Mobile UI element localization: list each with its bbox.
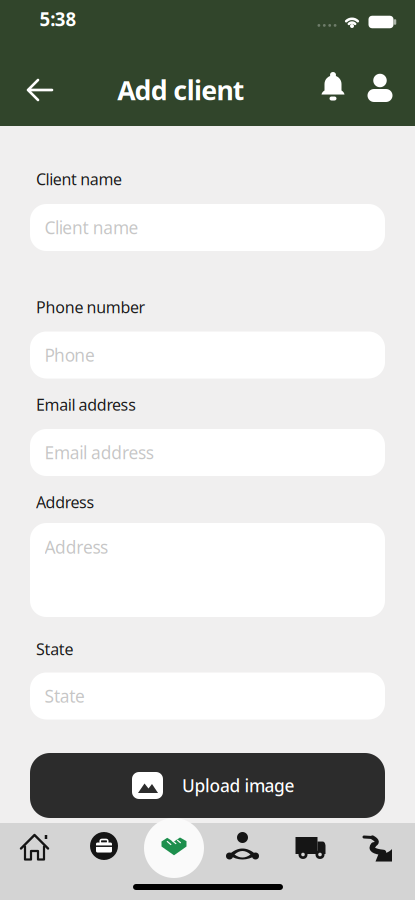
button[interactable]: Address [30,523,385,617]
staticText: Email address [36,394,136,415]
staticText: Upload image [182,774,294,797]
button[interactable]: Clients [152,826,196,866]
staticText: 5:38 [39,7,76,31]
button[interactable]: Deliveries [290,826,330,866]
button[interactable]: Client name [30,204,385,251]
staticText: Add client [117,72,245,108]
staticText: State [44,684,85,707]
staticText: Client name [36,168,122,190]
button[interactable]: State [30,672,385,719]
button[interactable]: Routes [358,826,398,866]
button[interactable]: Notifications [315,70,351,110]
staticText: Address [44,535,108,558]
button[interactable]: Phone [30,331,385,378]
button[interactable]: Email address [30,429,385,476]
staticText: Phone [44,343,95,366]
button[interactable]: Profile [362,70,398,110]
button[interactable]: Back [18,68,62,112]
button[interactable]: Team [222,826,262,866]
button[interactable]: Upload image [30,753,385,818]
staticText: Email address [44,441,154,464]
button[interactable]: Services [84,826,124,866]
staticText: Phone number [36,296,146,318]
staticText: Client name [44,216,138,239]
staticText: Address [36,491,95,513]
staticText: State [36,638,73,660]
button[interactable]: Home [14,826,54,866]
